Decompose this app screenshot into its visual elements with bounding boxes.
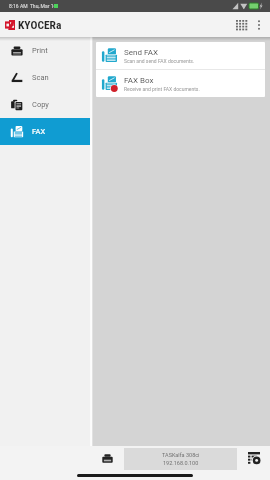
staticText: Scan and send FAX documents. (124, 58, 195, 64)
staticText: 192.168.0.100 (163, 460, 199, 466)
staticText: Receive and print FAX documents. (124, 86, 200, 92)
staticText: Send FAX (124, 48, 158, 57)
button[interactable]: Scan (0, 64, 90, 91)
button[interactable]: Copy (0, 91, 90, 118)
staticText: TASKalfa 308ci (162, 452, 200, 458)
staticText: Print (32, 46, 48, 55)
button[interactable]: Apps (230, 13, 254, 37)
staticText: 8:16 AM Thu, Mar 16 (9, 3, 57, 9)
button[interactable]: FAX Box (96, 70, 265, 97)
button[interactable]: More options (249, 15, 269, 35)
staticText: FAX (32, 127, 46, 136)
button[interactable]: Device settings (242, 447, 266, 469)
staticText: Scan (32, 73, 49, 82)
staticText: KYOCERa (18, 18, 62, 31)
button[interactable]: Send FAX (96, 42, 265, 69)
button[interactable]: TASKalfa 308ci (124, 448, 237, 470)
staticText: Copy (32, 100, 49, 109)
button[interactable]: Printer status (95, 447, 119, 469)
staticText: FAX Box (124, 76, 154, 85)
button[interactable]: FAX (0, 118, 90, 145)
button[interactable]: Print (0, 37, 90, 64)
